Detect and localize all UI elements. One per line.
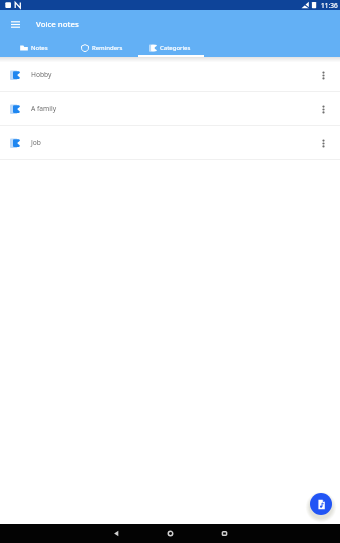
button[interactable]: More options bbox=[314, 134, 332, 152]
button[interactable]: Back bbox=[89, 524, 143, 543]
button[interactable]: Menu bbox=[2, 10, 28, 38]
button[interactable]: Home bbox=[143, 524, 197, 543]
button[interactable]: New note bbox=[310, 493, 332, 515]
staticText: Job bbox=[31, 138, 41, 147]
staticText: Categories bbox=[160, 44, 191, 52]
button[interactable]: More options bbox=[314, 66, 332, 84]
staticText: A family bbox=[31, 104, 57, 113]
staticText: Voice notes bbox=[36, 19, 79, 30]
staticText: Reminders bbox=[92, 44, 123, 52]
button[interactable]: Hobby bbox=[0, 58, 340, 91]
button[interactable]: Recents bbox=[197, 524, 251, 543]
staticText: Notes bbox=[31, 44, 48, 52]
button[interactable]: More options bbox=[314, 100, 332, 118]
button[interactable]: Notes bbox=[0, 38, 68, 57]
button[interactable]: Categories bbox=[136, 38, 204, 57]
button[interactable]: Job bbox=[0, 126, 340, 159]
staticText: Hobby bbox=[31, 70, 52, 79]
staticText: 11:36 bbox=[321, 1, 338, 10]
button[interactable]: Reminders bbox=[68, 38, 136, 57]
button[interactable]: A family bbox=[0, 92, 340, 125]
